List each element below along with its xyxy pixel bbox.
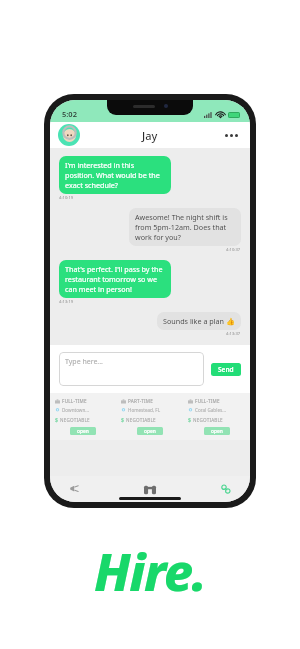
staticText: $ xyxy=(55,416,58,423)
button[interactable]: PART-TIME xyxy=(116,398,183,435)
button[interactable]: Sounds like a plan 👍 xyxy=(157,312,241,330)
button[interactable]: Type here... xyxy=(59,352,204,386)
staticText: open xyxy=(144,428,156,435)
button[interactable]: Awesome! The night shift is from 5pm-12a… xyxy=(129,208,241,246)
staticText: Homestead, FL xyxy=(128,407,161,413)
button[interactable]: open xyxy=(137,427,163,435)
staticText: 4:10:19 xyxy=(59,195,74,201)
button[interactable]: FULL-TIME xyxy=(50,398,116,435)
staticText: 4:13:37 xyxy=(226,331,241,337)
button[interactable]: Connections xyxy=(218,481,234,497)
staticText: Type here... xyxy=(65,357,103,367)
staticText: open xyxy=(77,428,89,435)
button[interactable]: I'm interested in this position. What wo… xyxy=(59,156,171,194)
button[interactable]: open xyxy=(70,427,96,435)
staticText: open xyxy=(211,428,223,435)
staticText: I'm interested in this position. What wo… xyxy=(65,160,165,190)
staticText: Awesome! The night shift is from 5pm-12a… xyxy=(135,212,235,242)
button[interactable]: Announcements xyxy=(66,481,82,497)
staticText: Send xyxy=(218,365,234,374)
staticText: NEGOTIABLE xyxy=(60,417,90,423)
staticText: NEGOTIABLE xyxy=(126,417,156,423)
staticText: That's perfect. I'll pass by the restaur… xyxy=(65,264,165,294)
staticText: PART-TIME xyxy=(128,398,153,404)
button[interactable]: Profile xyxy=(58,124,80,146)
button[interactable]: More options xyxy=(223,132,240,139)
staticText: 5:02 xyxy=(62,109,77,119)
button[interactable]: Explore xyxy=(141,480,159,498)
staticText: $ xyxy=(121,416,124,423)
staticText: Downtown... xyxy=(62,407,89,413)
staticText: $ xyxy=(188,416,191,423)
button[interactable]: FULL-TIME xyxy=(183,398,250,435)
staticText: Hire. xyxy=(94,535,206,606)
staticText: 4:13:19 xyxy=(59,299,74,305)
staticText: FULL-TIME xyxy=(195,398,220,404)
staticText: NEGOTIABLE xyxy=(193,417,223,423)
button[interactable]: That's perfect. I'll pass by the restaur… xyxy=(59,260,171,298)
button[interactable]: open xyxy=(204,427,230,435)
button[interactable]: Send xyxy=(211,363,241,376)
staticText: FULL-TIME xyxy=(62,398,87,404)
staticText: Jay xyxy=(142,128,158,143)
staticText: Sounds like a plan 👍 xyxy=(163,316,235,326)
staticText: Coral Gables... xyxy=(195,407,226,413)
staticText: 4:10:37 xyxy=(226,247,241,253)
